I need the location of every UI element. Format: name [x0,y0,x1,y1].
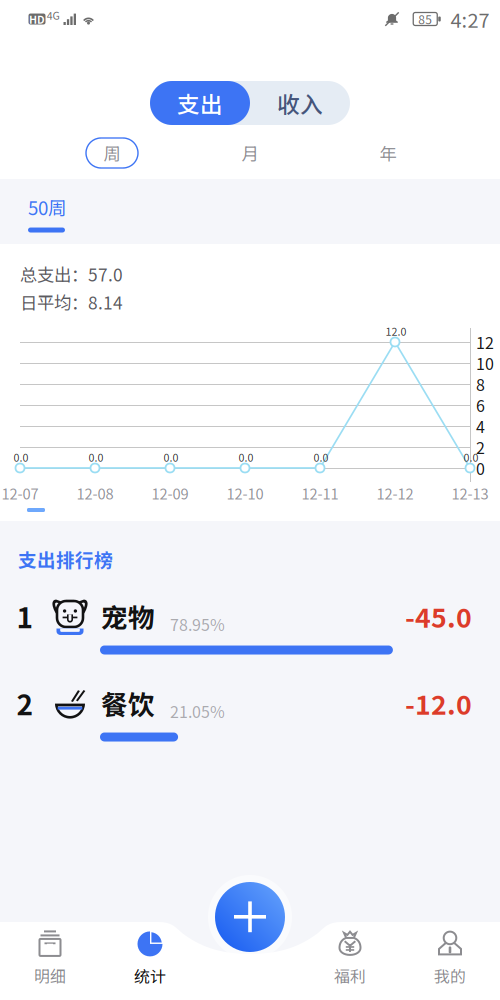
staticText: 支出排行榜 [18,545,113,572]
staticText: 餐饮 [101,684,155,722]
staticText: 12-09 [151,482,188,504]
button[interactable]: 周 [86,138,138,168]
staticText: 12.0 [385,323,406,339]
staticText: 宠物 [101,597,155,635]
staticText: 福利 [334,964,366,987]
staticText: 4:27 [450,4,489,33]
staticText: -12.0 [405,684,472,722]
staticText: 21.05% [170,699,225,723]
staticText: 年 [379,140,396,166]
button[interactable]: 统计 [100,927,200,989]
button[interactable]: 月 [224,138,276,168]
button[interactable]: 福利 [300,927,400,989]
staticText: 明细 [34,964,66,987]
staticText: 我的 [434,964,466,987]
staticText: 0 [476,456,485,480]
button[interactable]: 明细 [0,927,100,989]
staticText: 12-12 [376,482,413,504]
staticText: 12-08 [76,482,113,504]
button[interactable]: Add transaction [208,875,292,959]
staticText: 统计 [134,964,166,987]
staticText: 2 [476,435,485,459]
staticText: 12-07 [1,482,38,504]
staticText: 8 [476,372,485,396]
button[interactable]: 1 [0,591,500,667]
staticText: 月 [241,140,258,166]
staticText: 0.0 [463,449,478,465]
staticText: 支出 [177,87,223,119]
staticText: 6 [476,393,485,417]
button[interactable]: 支出 [150,81,250,125]
staticText: 50周 [28,193,67,220]
staticText: 1 [16,596,33,636]
staticText: HD [29,11,45,27]
staticText: 收入 [277,87,323,119]
staticText: 4 [476,414,485,438]
staticText: 0.0 [88,449,103,465]
staticText: 总支出：57.0 [20,261,123,287]
staticText: 12-13 [451,482,488,504]
staticText: 日平均：8.14 [20,289,123,315]
staticText: 78.95% [170,612,225,636]
staticText: 周 [103,140,120,166]
button[interactable]: 年 [362,138,414,168]
staticText: 12-11 [301,482,338,504]
button[interactable]: 50周 [28,193,70,232]
staticText: 4G [46,7,59,23]
staticText: 2 [16,683,33,723]
staticText: -45.0 [405,597,472,635]
staticText: 0.0 [313,449,328,465]
button[interactable]: 2 [0,678,500,754]
staticText: 12 [476,330,494,354]
staticText: 0.0 [238,449,253,465]
button[interactable]: 我的 [400,927,500,989]
staticText: 12-10 [226,482,263,504]
button[interactable]: 收入 [250,81,350,125]
staticText: 0.0 [163,449,178,465]
staticText: 0.0 [13,449,28,465]
staticText: 85 [418,10,432,28]
staticText: 10 [476,351,494,375]
